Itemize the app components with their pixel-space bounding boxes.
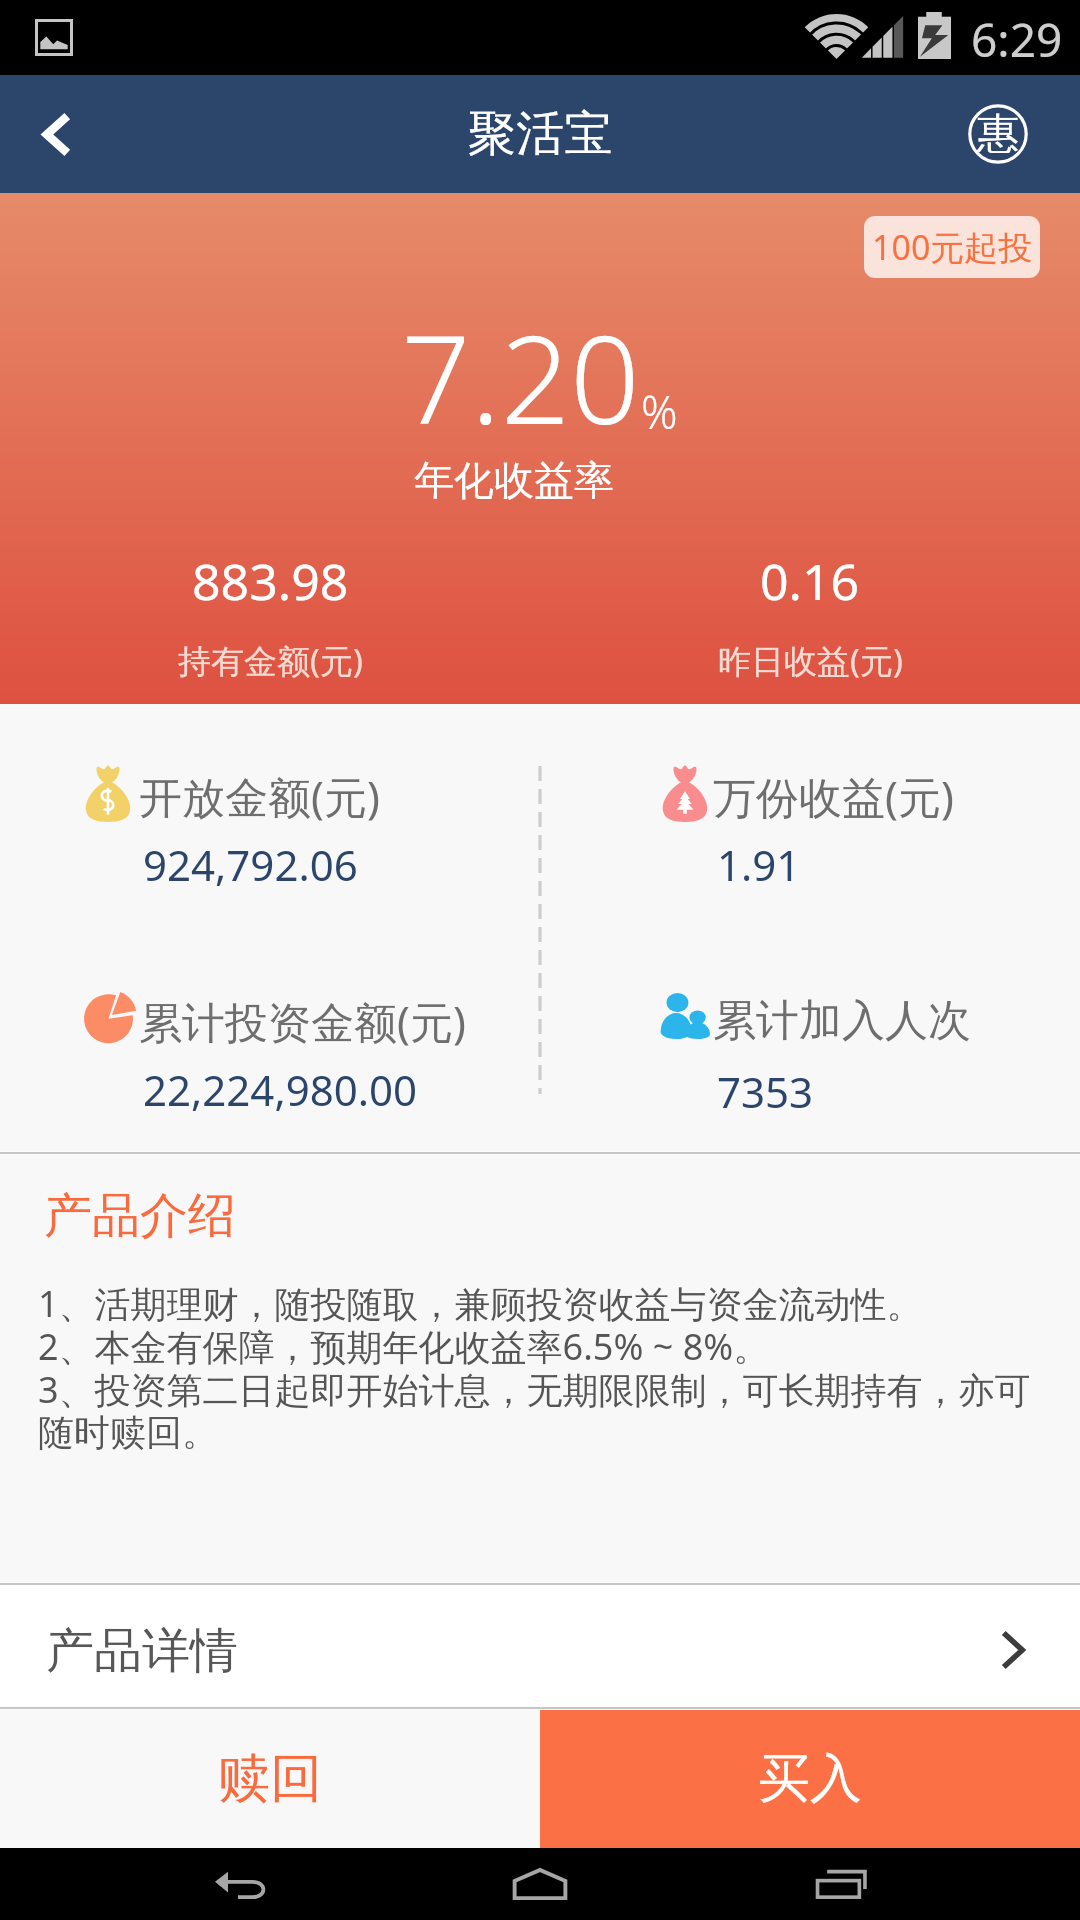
button[interactable]: Back [150, 1848, 330, 1920]
button[interactable]: 买入 [540, 1710, 1080, 1848]
staticText: 年化收益率 [414, 455, 614, 505]
button[interactable]: 100元起投 [864, 216, 1040, 278]
staticText: 7353 [717, 1063, 814, 1120]
staticText: 产品详情 [46, 1621, 238, 1681]
staticText: 883.98 [192, 547, 349, 615]
staticText: 开放金额(元) [139, 767, 380, 826]
button[interactable]: Back [0, 75, 110, 193]
button[interactable]: 赎回 [0, 1710, 540, 1848]
staticText: 买入 [758, 1746, 862, 1812]
staticText: 持有金额(元) [178, 638, 363, 683]
staticText: 1、活期理财，随投随取，兼顾投资收益与资金流动性。 2、本金有保障，预期年化收益… [38, 1279, 1038, 1455]
staticText: 赎回 [218, 1746, 322, 1812]
staticText: 924,792.06 [143, 836, 358, 893]
staticText: 累计投资金额(元) [139, 992, 466, 1051]
staticText: 惠 [977, 108, 1019, 161]
button[interactable]: Home [450, 1848, 630, 1920]
staticText: 累计加入人次 [713, 994, 971, 1048]
staticText: % [641, 381, 678, 442]
button[interactable]: Promotions [940, 75, 1055, 193]
staticText: 昨日收益(元) [718, 638, 903, 683]
staticText: 0.16 [760, 547, 860, 615]
button[interactable]: Recents [751, 1848, 931, 1920]
staticText: 6:29 [971, 8, 1063, 71]
staticText: 1.91 [717, 836, 801, 893]
staticText: 万份收益(元) [713, 767, 954, 826]
staticText: 产品介绍 [44, 1186, 236, 1246]
staticText: 100元起投 [872, 224, 1033, 270]
staticText: 22,224,980.00 [143, 1061, 418, 1118]
staticText: 聚活宝 [468, 104, 612, 164]
staticText: 7.20 [401, 294, 640, 460]
button[interactable]: 产品详情 [0, 1586, 1080, 1706]
